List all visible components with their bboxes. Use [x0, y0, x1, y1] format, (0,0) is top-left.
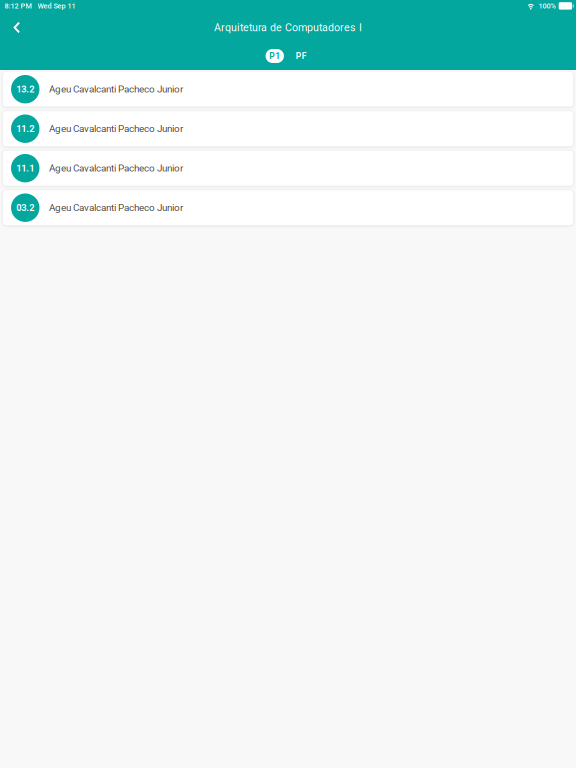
button[interactable]: 03.2	[3, 190, 573, 225]
button[interactable]: PF	[284, 49, 310, 63]
staticText: Ageu Cavalcanti Pacheco Junior	[49, 202, 183, 213]
staticText: 8:12 PM	[4, 2, 31, 10]
staticText: 100%	[538, 2, 555, 10]
staticText: Ageu Cavalcanti Pacheco Junior	[49, 123, 183, 134]
staticText: P1	[269, 51, 280, 61]
staticText: Wed Sep 11	[37, 2, 75, 10]
staticText: 13.2	[16, 84, 34, 95]
staticText: PF	[296, 51, 307, 61]
button[interactable]: P1	[266, 49, 284, 63]
staticText: Arquitetura de Computadores I	[214, 21, 362, 34]
staticText: Ageu Cavalcanti Pacheco Junior	[49, 162, 183, 174]
button[interactable]: 13.2	[3, 72, 573, 107]
button[interactable]: Back	[0, 16, 33, 40]
staticText: 11.2	[16, 123, 34, 134]
button[interactable]: 11.2	[3, 111, 573, 146]
staticText: 03.2	[16, 202, 34, 213]
staticText: 11.1	[16, 163, 34, 174]
button[interactable]: 11.1	[3, 151, 573, 186]
staticText: Ageu Cavalcanti Pacheco Junior	[49, 83, 183, 95]
